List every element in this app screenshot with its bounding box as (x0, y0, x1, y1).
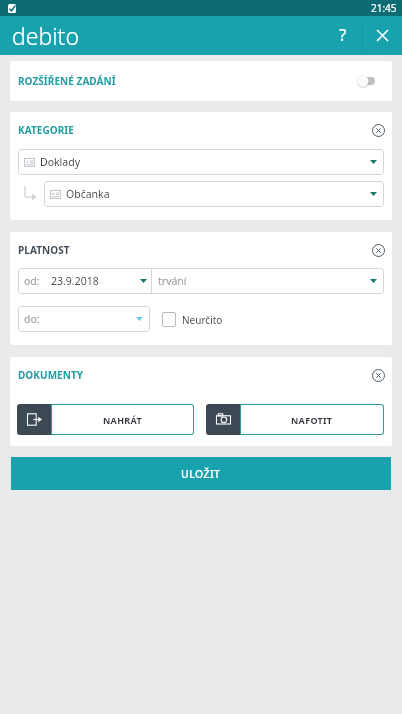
staticText: ? (339, 23, 347, 46)
staticText: Doklady (40, 155, 81, 169)
staticText: ULOŽIT (181, 467, 221, 481)
staticText: PLATNOST (18, 243, 70, 257)
button[interactable]: Toggle advanced entry (357, 68, 377, 94)
staticText: 23.9.2018 (51, 274, 99, 288)
staticText: NAHRÁT (103, 414, 142, 426)
button[interactable]: do: (18, 306, 150, 332)
button[interactable]: Clear DOKUMENTY (369, 366, 387, 384)
staticText: trvání (158, 274, 187, 288)
button[interactable]: NAHRÁT (17, 404, 194, 435)
button[interactable]: Close (363, 16, 402, 55)
staticText: NAFOTIT (291, 414, 333, 426)
staticText: Neurčito (182, 313, 223, 327)
staticText: do: (24, 312, 40, 326)
button[interactable]: Help (323, 16, 363, 55)
button[interactable]: Neurčito (162, 312, 223, 327)
staticText: DOKUMENTY (18, 368, 84, 382)
button[interactable]: Clear PLATNOST (369, 241, 387, 259)
staticText: 21:45 (371, 1, 397, 15)
staticText: od: (24, 274, 40, 288)
staticText: KATEGORIE (18, 123, 74, 137)
button[interactable]: od: (18, 268, 151, 294)
staticText: Občanka (66, 187, 110, 201)
button[interactable]: NAFOTIT (206, 404, 384, 435)
staticText: debito (12, 20, 79, 51)
button[interactable]: Občanka (44, 181, 384, 207)
button[interactable]: trvání (152, 268, 384, 294)
staticText: ROZŠÍŘENÉ ZADÁNÍ (18, 74, 116, 88)
button[interactable]: Clear KATEGORIE (369, 121, 387, 139)
button[interactable]: ULOŽIT (11, 457, 391, 490)
button[interactable]: Doklady (18, 149, 384, 175)
